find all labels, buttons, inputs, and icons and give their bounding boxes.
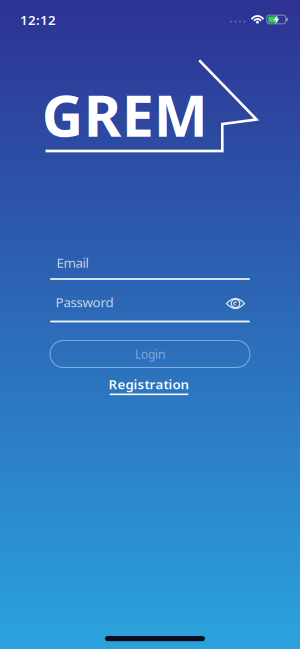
button[interactable]: Show password xyxy=(222,292,248,314)
staticText: Registration xyxy=(108,375,189,393)
staticText: GREM xyxy=(42,76,208,152)
button[interactable]: Registration xyxy=(108,375,190,396)
staticText: 12:12 xyxy=(20,11,56,29)
button[interactable]: Password xyxy=(50,292,250,323)
button[interactable]: Login xyxy=(50,340,250,367)
staticText: Login xyxy=(135,346,165,362)
staticText: Email xyxy=(56,254,88,271)
button[interactable]: Email xyxy=(50,252,250,281)
staticText: Password xyxy=(55,293,113,311)
